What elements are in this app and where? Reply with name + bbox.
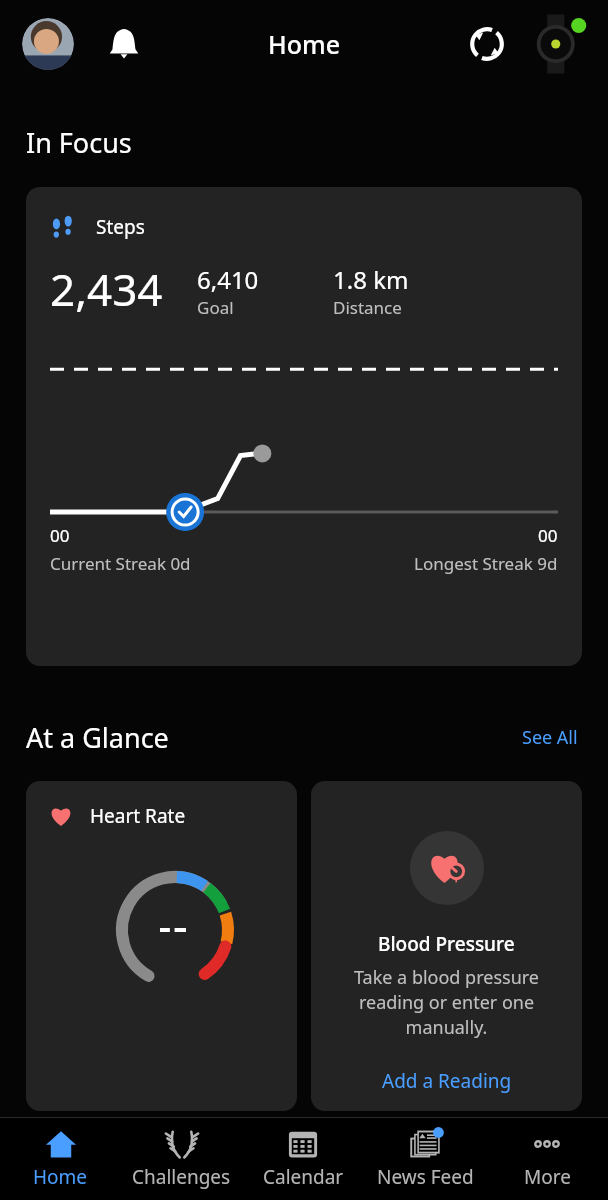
button[interactable]: Home bbox=[0, 1118, 121, 1200]
staticText: Goal bbox=[197, 296, 234, 319]
button[interactable]: News Feed bbox=[364, 1118, 486, 1200]
button[interactable]: Sync bbox=[462, 19, 512, 69]
button[interactable]: Steps bbox=[26, 187, 582, 666]
button[interactable]: More bbox=[486, 1118, 608, 1200]
button[interactable]: Calendar bbox=[242, 1118, 364, 1200]
staticText: Heart Rate bbox=[90, 803, 186, 829]
staticText: Blood Pressure bbox=[378, 931, 515, 957]
button[interactable]: Add a Reading bbox=[378, 1064, 516, 1098]
staticText: 2,434 bbox=[50, 259, 163, 319]
staticText: Distance bbox=[333, 296, 402, 319]
staticText: 00 bbox=[50, 524, 70, 547]
staticText: See All bbox=[522, 725, 578, 750]
staticText: Add a Reading bbox=[382, 1068, 512, 1094]
staticText: Home bbox=[33, 1164, 88, 1190]
staticText: Steps bbox=[96, 214, 145, 240]
staticText: Home bbox=[268, 27, 341, 61]
staticText: 6,410 bbox=[197, 263, 259, 296]
staticText: Longest Streak 9d bbox=[414, 552, 558, 575]
button[interactable]: See All bbox=[518, 721, 582, 754]
button[interactable]: Profile bbox=[22, 18, 74, 70]
button[interactable]: Challenges bbox=[121, 1118, 242, 1200]
staticText: At a Glance bbox=[26, 719, 169, 756]
staticText: 00 bbox=[538, 524, 558, 547]
staticText: 1.8 km bbox=[333, 263, 409, 296]
button[interactable]: Notifications bbox=[100, 20, 148, 68]
staticText: News Feed bbox=[377, 1164, 474, 1190]
staticText: Current Streak 0d bbox=[50, 552, 191, 575]
staticText: Challenges bbox=[132, 1164, 231, 1190]
staticText: Calendar bbox=[263, 1164, 344, 1190]
staticText: Take a blood pressure reading or enter o… bbox=[325, 965, 568, 1040]
button[interactable]: Heart Rate bbox=[26, 781, 297, 1111]
staticText: More bbox=[524, 1164, 571, 1190]
staticText: In Focus bbox=[26, 124, 132, 161]
button[interactable]: Device bbox=[530, 16, 586, 72]
button[interactable]: Blood Pressure bbox=[311, 781, 582, 1111]
